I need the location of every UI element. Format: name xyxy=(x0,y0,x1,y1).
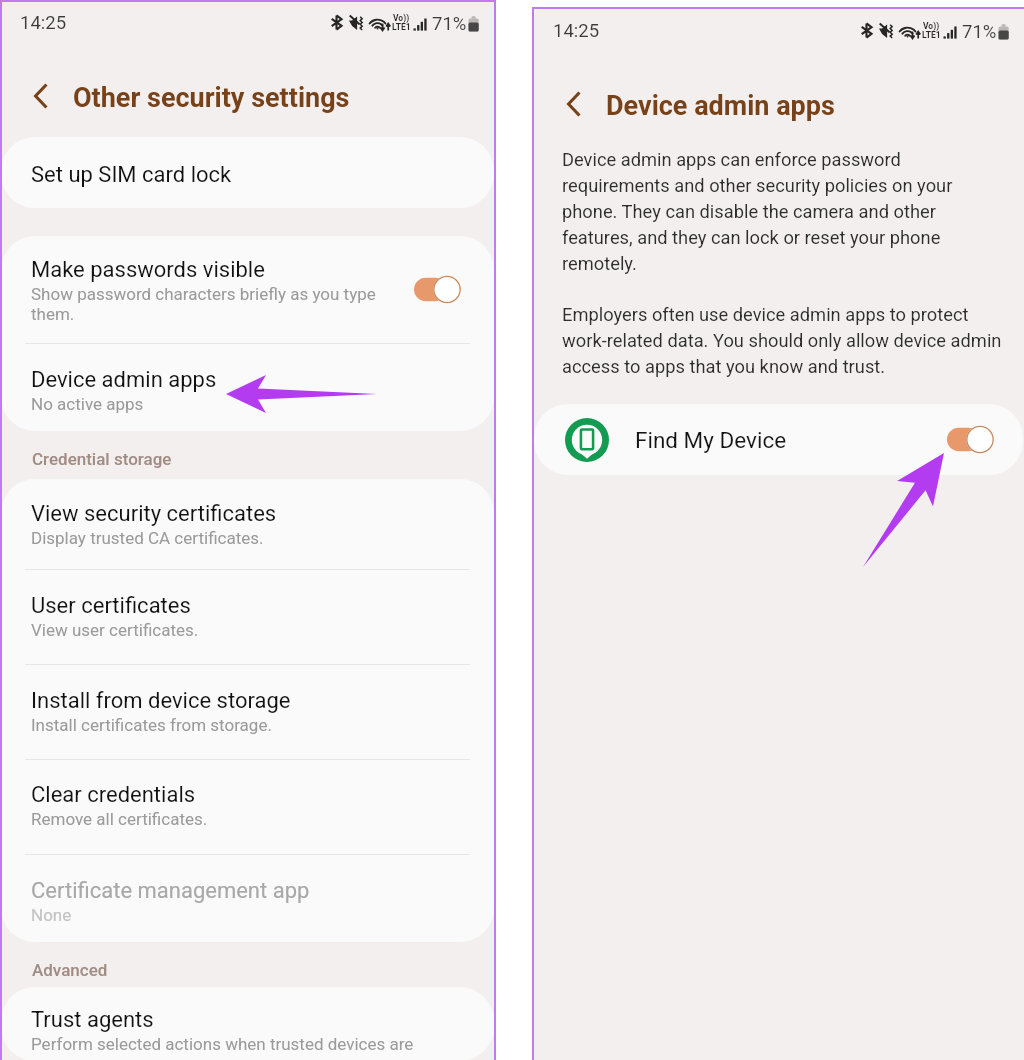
staticText: Remove all certificates. xyxy=(31,809,208,829)
staticText: View user certificates. xyxy=(31,620,199,640)
staticText: Install from device storage xyxy=(31,686,291,714)
staticText: 71% xyxy=(432,13,467,31)
button[interactable]: Back xyxy=(558,88,590,120)
staticText: 14:25 xyxy=(20,13,67,33)
staticText: Certificate management app xyxy=(31,876,310,904)
staticText: Find My Device xyxy=(635,426,787,454)
button[interactable]: Find My Device xyxy=(534,404,1023,475)
staticText: Employers often use device admin apps to… xyxy=(562,300,1002,378)
staticText: Display trusted CA certificates. xyxy=(31,528,264,548)
button[interactable]: View security certificates xyxy=(1,479,494,569)
staticText: Credential storage xyxy=(32,449,172,469)
button[interactable]: User certificates xyxy=(1,570,494,664)
staticText: Perform selected actions when trusted de… xyxy=(31,1034,414,1054)
staticText: View security certificates xyxy=(31,499,277,527)
staticText: User certificates xyxy=(31,591,191,619)
button[interactable]: Make passwords visible xyxy=(1,236,494,343)
staticText: Set up SIM card lock xyxy=(31,160,232,188)
staticText: Vo)) xyxy=(393,14,410,23)
staticText: None xyxy=(31,905,72,925)
button[interactable]: Back xyxy=(25,80,57,112)
button[interactable]: Install from device storage xyxy=(1,665,494,759)
staticText: Other security settings xyxy=(73,80,350,114)
staticText: Device admin apps xyxy=(31,365,217,393)
button[interactable]: Set up SIM card lock xyxy=(1,137,494,208)
staticText: Device admin apps can enforce password r… xyxy=(562,145,1002,275)
button[interactable]: Certificate management app xyxy=(1,855,494,942)
staticText: Advanced xyxy=(32,960,108,980)
staticText: Vo)) xyxy=(923,22,940,31)
staticText: Clear credentials xyxy=(31,780,196,808)
staticText: Trust agents xyxy=(31,1005,154,1033)
button[interactable]: Trust agents xyxy=(1,987,494,1060)
button[interactable]: Device admin apps xyxy=(1,344,494,431)
button[interactable]: Toggle xyxy=(414,275,462,304)
staticText: Show password characters briefly as you … xyxy=(31,284,386,324)
staticText: Make passwords visible xyxy=(31,255,265,283)
staticText: LTE1 xyxy=(392,23,411,32)
staticText: Install certificates from storage. xyxy=(31,715,272,735)
staticText: Device admin apps xyxy=(606,88,835,122)
staticText: LTE1 xyxy=(922,31,941,40)
staticText: 14:25 xyxy=(553,21,600,41)
button[interactable]: Toggle xyxy=(947,425,995,454)
staticText: 71% xyxy=(962,21,997,39)
staticText: No active apps xyxy=(31,394,144,414)
button[interactable]: Clear credentials xyxy=(1,760,494,854)
